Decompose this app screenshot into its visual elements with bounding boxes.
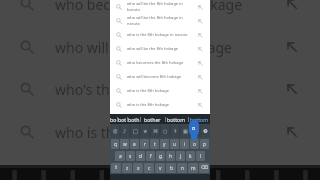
- staticText: bother: [144, 116, 161, 123]
- button[interactable]: bot: [117, 114, 127, 124]
- staticText: who will become 8th hokage: [127, 74, 182, 80]
- button[interactable]: keyboard tool 0: [110, 124, 120, 138]
- button[interactable]: e: [130, 139, 139, 149]
- button[interactable]: d: [136, 151, 145, 161]
- button[interactable]: keyboard tool 6: [170, 124, 180, 138]
- button[interactable]: who is the 8th hokage: [110, 98, 210, 112]
- button[interactable]: bottom: [165, 114, 188, 124]
- staticText: who is the 8th hokage in naruto: [127, 32, 188, 38]
- staticText: k: [189, 153, 192, 160]
- button[interactable]: bottom: [188, 114, 210, 124]
- staticText: o: [193, 141, 196, 148]
- button[interactable]: f: [146, 151, 155, 161]
- button[interactable]: m: [188, 163, 198, 173]
- button[interactable]: j: [176, 151, 185, 161]
- button[interactable]: w: [120, 139, 129, 149]
- staticText: d: [139, 153, 142, 160]
- button[interactable]: p: [200, 139, 209, 149]
- staticText: ⇧: [114, 165, 119, 171]
- staticText: h: [169, 153, 172, 160]
- button[interactable]: s: [126, 151, 135, 161]
- button[interactable]: k: [186, 151, 195, 161]
- button[interactable]: keyboard tool 8: [190, 124, 200, 138]
- staticText: naruto: [127, 21, 140, 27]
- staticText: □: [133, 128, 138, 134]
- staticText: f: [150, 153, 152, 160]
- staticText: bottom: [190, 116, 209, 123]
- staticText: bo: [110, 116, 117, 123]
- staticText: r: [144, 141, 146, 148]
- staticText: bot: [118, 116, 127, 123]
- button[interactable]: keyboard tool 1: [120, 124, 130, 138]
- button[interactable]: keyboard tool 5: [160, 124, 170, 138]
- staticText: ○: [163, 128, 168, 134]
- button[interactable]: who is the 8th hokage in naruto: [110, 28, 210, 42]
- staticText: who is the 8th hokage: [127, 88, 169, 94]
- staticText: ‡: [174, 128, 177, 135]
- button[interactable]: both: [127, 114, 140, 124]
- staticText: ⌘: [153, 128, 158, 134]
- button[interactable]: who becomes the 8th hokage: [110, 56, 210, 70]
- staticText: @: [113, 128, 118, 135]
- button[interactable]: c: [144, 163, 154, 173]
- button[interactable]: ⇧: [111, 163, 121, 173]
- button[interactable]: keyboard tool 9: [200, 124, 210, 138]
- staticText: both: [128, 116, 140, 123]
- staticText: boruto: [127, 7, 141, 13]
- staticText: c: [148, 165, 151, 172]
- button[interactable]: o: [190, 139, 199, 149]
- staticText: n: [181, 165, 184, 172]
- staticText: z: [126, 165, 129, 172]
- button[interactable]: keyboard tool 3: [140, 124, 150, 138]
- button[interactable]: x: [133, 163, 143, 173]
- staticText: e: [133, 141, 136, 148]
- staticText: w: [123, 141, 127, 148]
- button[interactable]: g: [156, 151, 165, 161]
- button[interactable]: q: [111, 139, 119, 149]
- button[interactable]: u: [170, 139, 179, 149]
- staticText: l: [200, 153, 202, 160]
- staticText: who will be the 8th hokage in: [127, 15, 183, 21]
- staticText: x: [137, 165, 140, 172]
- staticText: who is the 8th hokage: [127, 102, 169, 108]
- button[interactable]: h: [166, 151, 175, 161]
- staticText: s: [129, 153, 132, 160]
- button[interactable]: keyboard tool 2: [130, 124, 140, 138]
- staticText: who's the 8th hokage: [55, 80, 196, 99]
- button[interactable]: l: [196, 151, 205, 161]
- button[interactable]: who will be the 8th hokage: [110, 42, 210, 56]
- button[interactable]: r: [140, 139, 149, 149]
- staticText: g: [159, 153, 162, 160]
- button[interactable]: bother: [140, 114, 165, 124]
- staticText: b: [170, 165, 173, 172]
- button[interactable]: who will be the 8th hokage in: [110, 0, 210, 14]
- button[interactable]: v: [155, 163, 165, 173]
- button[interactable]: y: [160, 139, 169, 149]
- staticText: o: [192, 124, 196, 131]
- staticText: who will be the 8th hokage: [55, 38, 232, 57]
- button[interactable]: i: [180, 139, 189, 149]
- button[interactable]: who is the 8th hokage: [110, 84, 210, 98]
- button[interactable]: b: [166, 163, 176, 173]
- button[interactable]: bo: [110, 114, 117, 124]
- button[interactable]: who will become 8th hokage: [110, 70, 210, 84]
- button[interactable]: n: [177, 163, 187, 173]
- staticText: v: [159, 165, 162, 172]
- staticText: ♪: [123, 128, 127, 134]
- button[interactable]: who will be the 8th hokage in: [110, 14, 210, 28]
- staticText: who will be the 8th hokage: [127, 46, 179, 52]
- staticText: ◎: [193, 128, 198, 134]
- button[interactable]: a: [115, 151, 125, 161]
- button[interactable]: z: [122, 163, 132, 173]
- staticText: m: [191, 165, 196, 172]
- staticText: p: [203, 141, 206, 148]
- staticText: y: [163, 141, 166, 148]
- button[interactable]: keyboard tool 4: [150, 124, 160, 138]
- button[interactable]: keyboard tool 7: [180, 124, 190, 138]
- staticText: who became the 8th hokage: [55, 0, 243, 14]
- staticText: ▣: [183, 128, 188, 134]
- staticText: who will be the 8th hokage in: [127, 1, 183, 7]
- button[interactable]: o key preview: [189, 120, 199, 140]
- button[interactable]: ⌫: [199, 163, 209, 173]
- button[interactable]: t: [150, 139, 159, 149]
